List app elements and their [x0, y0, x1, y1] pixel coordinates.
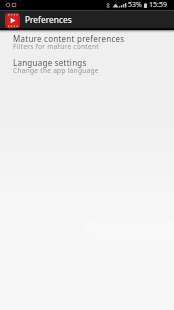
staticText: Change the app language: [13, 66, 99, 75]
staticText: 53%: [128, 0, 142, 10]
other: App icon: [5, 13, 20, 28]
button[interactable]: Language settings: [0, 54, 174, 78]
staticText: 15:59: [149, 0, 167, 10]
staticText: Mature content preferences: [13, 33, 125, 44]
staticText: Preferences: [25, 14, 72, 25]
staticText: Filters for mature content: [13, 42, 99, 51]
button[interactable]: Mature content preferences: [0, 30, 174, 54]
staticText: Language settings: [13, 57, 87, 68]
